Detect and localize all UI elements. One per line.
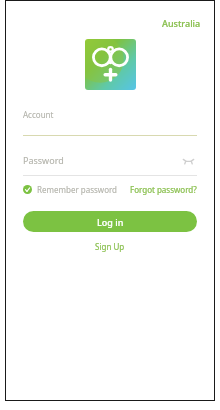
staticText: Password [23,154,64,166]
staticText: Australia [162,17,201,29]
staticText: Remember password [37,184,118,195]
staticText: Forgot password? [130,184,197,195]
button[interactable]: Sign Up [87,238,133,255]
button[interactable]: Forgot password? [130,181,197,198]
button[interactable]: Show password [179,153,197,167]
button[interactable]: Account [23,109,197,120]
staticText: Log in [97,216,124,228]
staticText: Sign Up [95,241,125,252]
button[interactable]: Password [23,154,179,166]
button[interactable]: Remember password [23,181,118,198]
button[interactable]: Australia [158,15,205,31]
staticText: Account [23,109,54,120]
button[interactable]: Log in [23,211,197,232]
